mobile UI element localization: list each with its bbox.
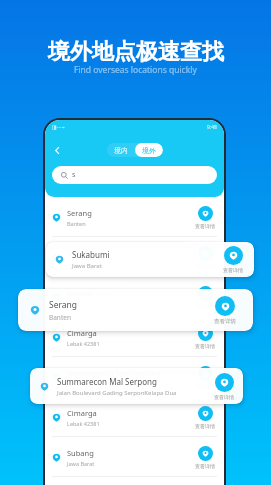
staticText: 查看详情 xyxy=(214,394,234,400)
button[interactable]: Cimarga xyxy=(45,317,224,357)
staticText: Lebak 42381 xyxy=(67,420,100,427)
staticText: Jalan Boulevard Gading SerponKelapa Dua xyxy=(57,389,177,397)
staticText: 查看详情 xyxy=(195,223,215,229)
staticText: 查看详情 xyxy=(195,423,215,429)
button[interactable]: Sukabumi xyxy=(46,242,254,277)
staticText: 境外地点极速查找 xyxy=(48,38,224,66)
staticText: Banten xyxy=(67,300,86,307)
staticText: ◨⋯⌁ xyxy=(52,124,65,130)
button[interactable]: Back xyxy=(49,142,65,158)
button[interactable]: Serang xyxy=(45,277,224,317)
staticText: Summarecon Mal Serpong xyxy=(57,376,157,387)
staticText: Cimarga xyxy=(67,408,97,418)
staticText: Sukabumi xyxy=(67,248,103,258)
staticText: Lebak 42381 xyxy=(67,340,100,347)
staticText: Serang xyxy=(67,208,92,218)
staticText: 境外 xyxy=(142,146,156,155)
staticText: 9:48 xyxy=(207,124,217,131)
staticText: Banten xyxy=(49,313,71,322)
staticText: Cimarga xyxy=(67,328,97,338)
button[interactable]: 境外 xyxy=(135,143,163,157)
staticText: Jawa Barat xyxy=(67,260,95,267)
staticText: s xyxy=(72,170,76,180)
button[interactable]: Summarecon Mal Serpong xyxy=(45,357,224,397)
staticText: 境内 xyxy=(114,146,128,155)
button[interactable]: Cimarga xyxy=(45,397,224,437)
staticText: Find overseas locations quickly xyxy=(74,64,197,76)
staticText: Banten xyxy=(67,220,86,227)
button[interactable]: Sukabumi xyxy=(45,237,224,277)
button[interactable]: s xyxy=(52,166,217,184)
button[interactable]: Subang xyxy=(45,437,224,477)
button[interactable]: Summarecon Mal Serpong xyxy=(30,368,243,404)
staticText: 查看详情 xyxy=(195,343,215,349)
staticText: Jawa Barat xyxy=(67,460,95,467)
staticText: Jalan Boulevard Gading Serpon xyxy=(67,380,148,387)
staticText: 查看详情 xyxy=(195,463,215,469)
staticText: Jawa Barat xyxy=(72,262,102,270)
staticText: 查看详情 xyxy=(214,318,236,325)
staticText: Sukabumi xyxy=(72,249,110,260)
button[interactable]: Serang xyxy=(18,289,253,331)
staticText: 查看详情 xyxy=(223,267,243,273)
staticText: Serang xyxy=(49,299,78,311)
button[interactable]: 境内 xyxy=(107,143,135,157)
staticText: Serang xyxy=(67,288,92,298)
staticText: Subang xyxy=(67,448,94,458)
button[interactable]: Serang xyxy=(45,197,224,237)
